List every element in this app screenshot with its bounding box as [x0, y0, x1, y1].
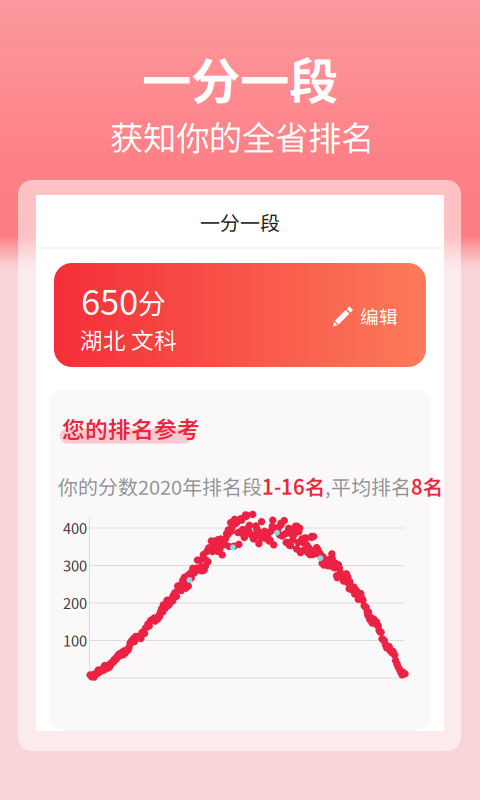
staticText: 8名: [411, 471, 443, 500]
staticText: 400: [63, 517, 87, 538]
staticText: 一分一段: [200, 207, 280, 236]
staticText: 300: [63, 554, 87, 576]
button[interactable]: 650: [81, 277, 261, 323]
staticText: 1-16名: [262, 471, 325, 500]
staticText: 分: [138, 282, 166, 322]
button[interactable]: 编辑: [333, 300, 453, 332]
staticText: 湖北 文科: [80, 323, 177, 355]
staticText: 650: [81, 275, 138, 325]
staticText: 一分一段: [142, 42, 338, 114]
staticText: 你的分数2020年排名段: [58, 471, 262, 500]
staticText: 您的排名参考: [62, 412, 200, 444]
staticText: 获知你的全省排名: [110, 112, 374, 160]
staticText: 200: [63, 592, 87, 613]
staticText: ,平均排名: [325, 471, 411, 500]
staticText: 编辑: [360, 302, 398, 329]
staticText: 100: [63, 629, 87, 651]
